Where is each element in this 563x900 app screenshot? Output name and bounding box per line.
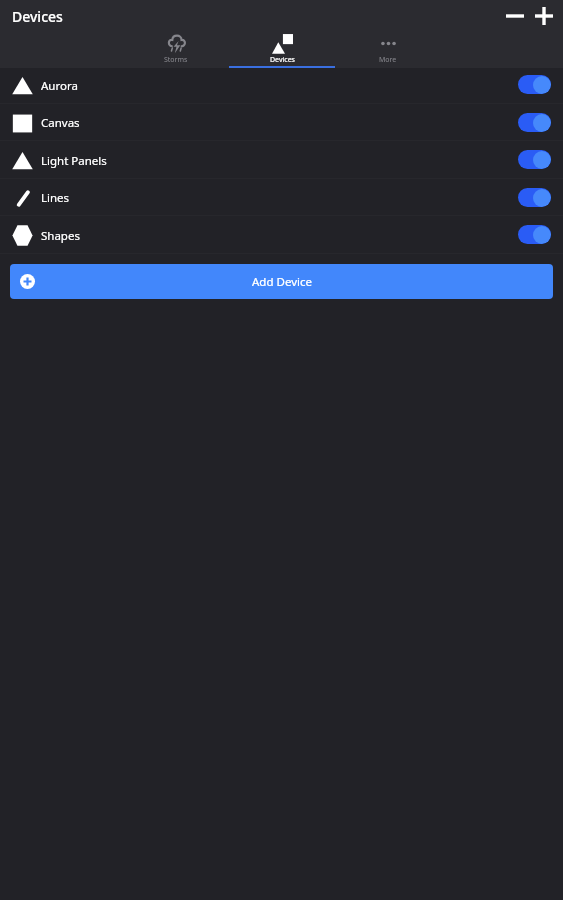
button[interactable]: Aurora [0,67,563,104]
button[interactable]: Toggle [518,225,551,244]
button[interactable]: Devices [229,30,335,68]
staticText: Devices [12,7,63,26]
staticText: Lines [41,190,70,206]
button[interactable]: Add Device [10,264,553,299]
staticText: Aurora [41,78,78,94]
staticText: Canvas [41,115,80,131]
button[interactable]: Shapes [0,217,563,254]
staticText: Devices [270,55,295,65]
staticText: Light Panels [41,153,107,169]
staticText: Add Device [252,274,312,290]
button[interactable]: Add [532,4,556,28]
button[interactable]: Toggle [518,150,551,169]
staticText: Shapes [41,228,80,244]
staticText: Storms [164,55,188,65]
button[interactable]: Minimize [503,4,527,28]
button[interactable]: More [335,30,441,68]
button[interactable]: Toggle [518,113,551,132]
button[interactable]: Toggle [518,75,551,94]
button[interactable]: Storms [123,30,229,68]
staticText: More [379,55,397,65]
button[interactable]: Light Panels [0,142,563,179]
button[interactable]: Toggle [518,188,551,207]
button[interactable]: Canvas [0,105,563,141]
button[interactable]: Lines [0,180,563,216]
